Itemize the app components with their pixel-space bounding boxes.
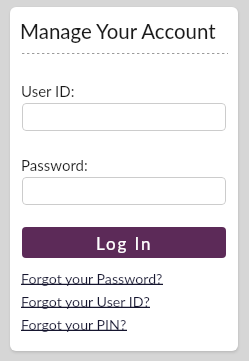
staticText: Forgot your Password? — [21, 270, 163, 287]
button[interactable]: Forgot your User ID? — [21, 293, 150, 310]
staticText: Log In — [96, 233, 153, 253]
button[interactable]: Forgot your Password? — [21, 270, 163, 287]
staticText: Manage Your Account — [20, 19, 216, 43]
button[interactable]: Forgot your PIN? — [21, 316, 127, 333]
button[interactable]: Log In — [22, 227, 226, 258]
staticText: User ID: — [21, 82, 75, 100]
button[interactable]: Password input field — [22, 177, 226, 205]
staticText: Forgot your PIN? — [21, 316, 127, 333]
staticText: Forgot your User ID? — [21, 293, 150, 310]
staticText: Password: — [21, 156, 88, 174]
button[interactable]: User ID input field — [22, 103, 226, 131]
